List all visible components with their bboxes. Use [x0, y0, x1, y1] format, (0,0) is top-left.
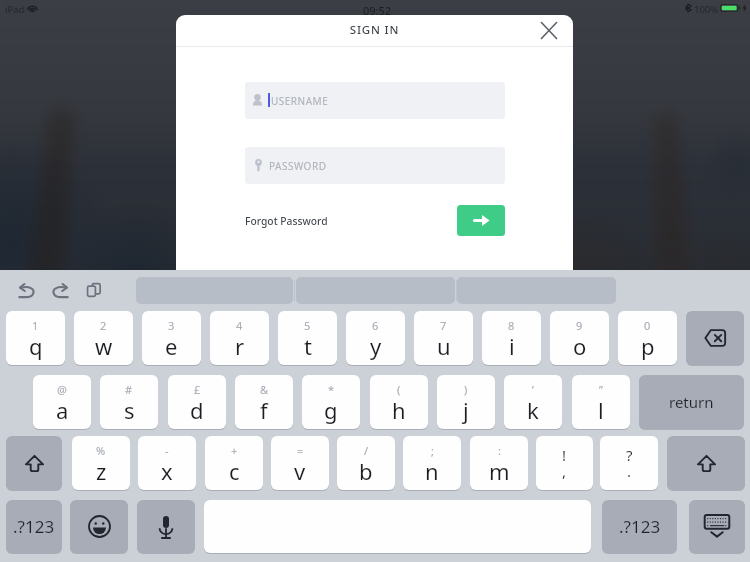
staticText: m [489, 456, 510, 486]
button[interactable]: £ [168, 375, 226, 429]
button[interactable]: 7 [414, 311, 473, 365]
button[interactable]: 9 [550, 311, 609, 365]
button[interactable]: Close [529, 15, 569, 46]
button[interactable]: return [639, 375, 744, 429]
staticText: s [124, 395, 135, 425]
staticText: o [573, 331, 587, 361]
staticText: iPad [5, 3, 25, 16]
button[interactable]: .?123 [602, 500, 677, 553]
button[interactable]: Redo [52, 284, 68, 298]
staticText: i [509, 331, 515, 361]
staticText: f [260, 395, 268, 425]
button[interactable]: Shift [6, 436, 62, 490]
staticText: 09:52 [363, 3, 392, 18]
staticText: x [161, 456, 173, 486]
staticText: c [229, 456, 240, 486]
staticText: 9 [576, 318, 583, 333]
staticText: 5 [304, 318, 311, 333]
button[interactable]: # [100, 375, 158, 429]
button[interactable]: 5 [278, 311, 337, 365]
staticText: 0 [644, 318, 651, 333]
button[interactable]: Hide keyboard [689, 500, 745, 553]
staticText: 7 [440, 318, 447, 333]
staticText: b [359, 456, 373, 486]
staticText: e [165, 331, 178, 361]
button[interactable]: ! [536, 436, 593, 490]
staticText: 1 [32, 318, 39, 333]
button[interactable]: ’ [504, 375, 562, 429]
staticText: g [324, 395, 338, 425]
button[interactable]: ? [600, 436, 658, 490]
staticText: 6 [372, 318, 379, 333]
staticText: - [165, 443, 169, 458]
staticText: & [260, 382, 269, 397]
button[interactable]: ( [370, 375, 428, 429]
button[interactable]: ) [437, 375, 495, 429]
staticText: r [235, 331, 245, 361]
staticText: # [125, 382, 133, 397]
button[interactable]: * [302, 375, 360, 429]
button[interactable]: Emoji [70, 500, 128, 553]
staticText: , [562, 461, 567, 481]
button[interactable]: ” [572, 375, 630, 429]
staticText: .?123 [619, 515, 661, 538]
button[interactable]: % [72, 436, 130, 490]
staticText: j [463, 395, 469, 425]
staticText: . [627, 461, 632, 481]
staticText: / [364, 443, 369, 458]
button[interactable]: / [337, 436, 395, 490]
button[interactable]: Forgot Password [245, 214, 328, 228]
button[interactable]: Paste [87, 283, 101, 297]
staticText: w [95, 331, 113, 361]
button[interactable]: 2 [74, 311, 133, 365]
staticText: SIGN IN [176, 22, 573, 38]
staticText: + [231, 443, 238, 458]
staticText: p [641, 331, 655, 361]
staticText: l [598, 395, 604, 425]
button[interactable]: USERNAME [245, 82, 505, 119]
staticText: k [527, 395, 539, 425]
button[interactable]: + [205, 436, 263, 490]
staticText: 100% [694, 3, 719, 16]
staticText: t [304, 331, 312, 361]
staticText: % [96, 443, 106, 458]
staticText: 4 [236, 318, 243, 333]
button[interactable]: .?123 [6, 500, 62, 553]
staticText: v [294, 456, 306, 486]
button[interactable]: ; [403, 436, 461, 490]
button[interactable]: Undo [19, 284, 35, 298]
button[interactable]: 0 [618, 311, 677, 365]
button[interactable]: = [271, 436, 329, 490]
button[interactable]: 1 [6, 311, 65, 365]
button[interactable]: 3 [142, 311, 201, 365]
button[interactable]: Submit [457, 205, 505, 236]
button[interactable]: Dictation [137, 500, 195, 553]
staticText: ’ [532, 382, 534, 397]
button[interactable]: @ [33, 375, 91, 429]
button[interactable]: & [235, 375, 293, 429]
staticText: return [669, 392, 714, 412]
staticText: @ [57, 382, 67, 397]
button[interactable]: : [470, 436, 528, 490]
staticText: h [392, 395, 406, 425]
staticText: = [297, 443, 304, 458]
staticText: * [328, 382, 335, 397]
button[interactable]: 4 [210, 311, 269, 365]
staticText: ( [397, 382, 401, 397]
staticText: ) [464, 382, 468, 397]
button[interactable]: Shift [667, 436, 745, 490]
button[interactable]: 8 [482, 311, 541, 365]
staticText: z [96, 456, 107, 486]
button[interactable]: Backspace [686, 311, 744, 365]
button[interactable]: - [138, 436, 196, 490]
staticText: .?123 [13, 515, 55, 538]
button[interactable]: 6 [346, 311, 405, 365]
staticText: USERNAME [271, 94, 329, 108]
staticText: a [56, 395, 69, 425]
staticText: y [370, 331, 382, 361]
button[interactable]: PASSWORD [245, 147, 505, 184]
